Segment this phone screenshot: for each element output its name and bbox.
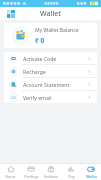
button[interactable]: Redeem <box>41 163 61 180</box>
staticText: Wallet <box>40 9 61 19</box>
button[interactable]: Play <box>61 163 81 180</box>
staticText: Account Statement <box>23 81 87 88</box>
button[interactable]: Recharge <box>4 65 97 77</box>
staticText: Privilege <box>24 174 39 179</box>
button[interactable]: Menu <box>5 8 17 20</box>
button[interactable]: Verify email <box>4 91 97 103</box>
staticText: Verify email <box>23 94 87 101</box>
staticText: Activate Code <box>23 55 87 62</box>
button[interactable]: Privilege <box>21 163 41 180</box>
button[interactable]: Account Statement <box>4 78 97 90</box>
staticText: My Wallet Balance <box>35 27 79 34</box>
staticText: Redeem <box>44 174 58 179</box>
staticText: Home <box>5 174 16 179</box>
staticText: ₹ 0 <box>35 36 45 45</box>
staticText: Play <box>68 174 75 179</box>
button[interactable]: Activate Code <box>4 52 97 64</box>
staticText: Recharge <box>23 68 87 75</box>
button[interactable]: My Wallet Balance <box>4 23 97 48</box>
button[interactable]: Wallet <box>81 163 101 180</box>
staticText: Wallet <box>86 174 97 179</box>
button[interactable]: Home <box>0 163 21 180</box>
